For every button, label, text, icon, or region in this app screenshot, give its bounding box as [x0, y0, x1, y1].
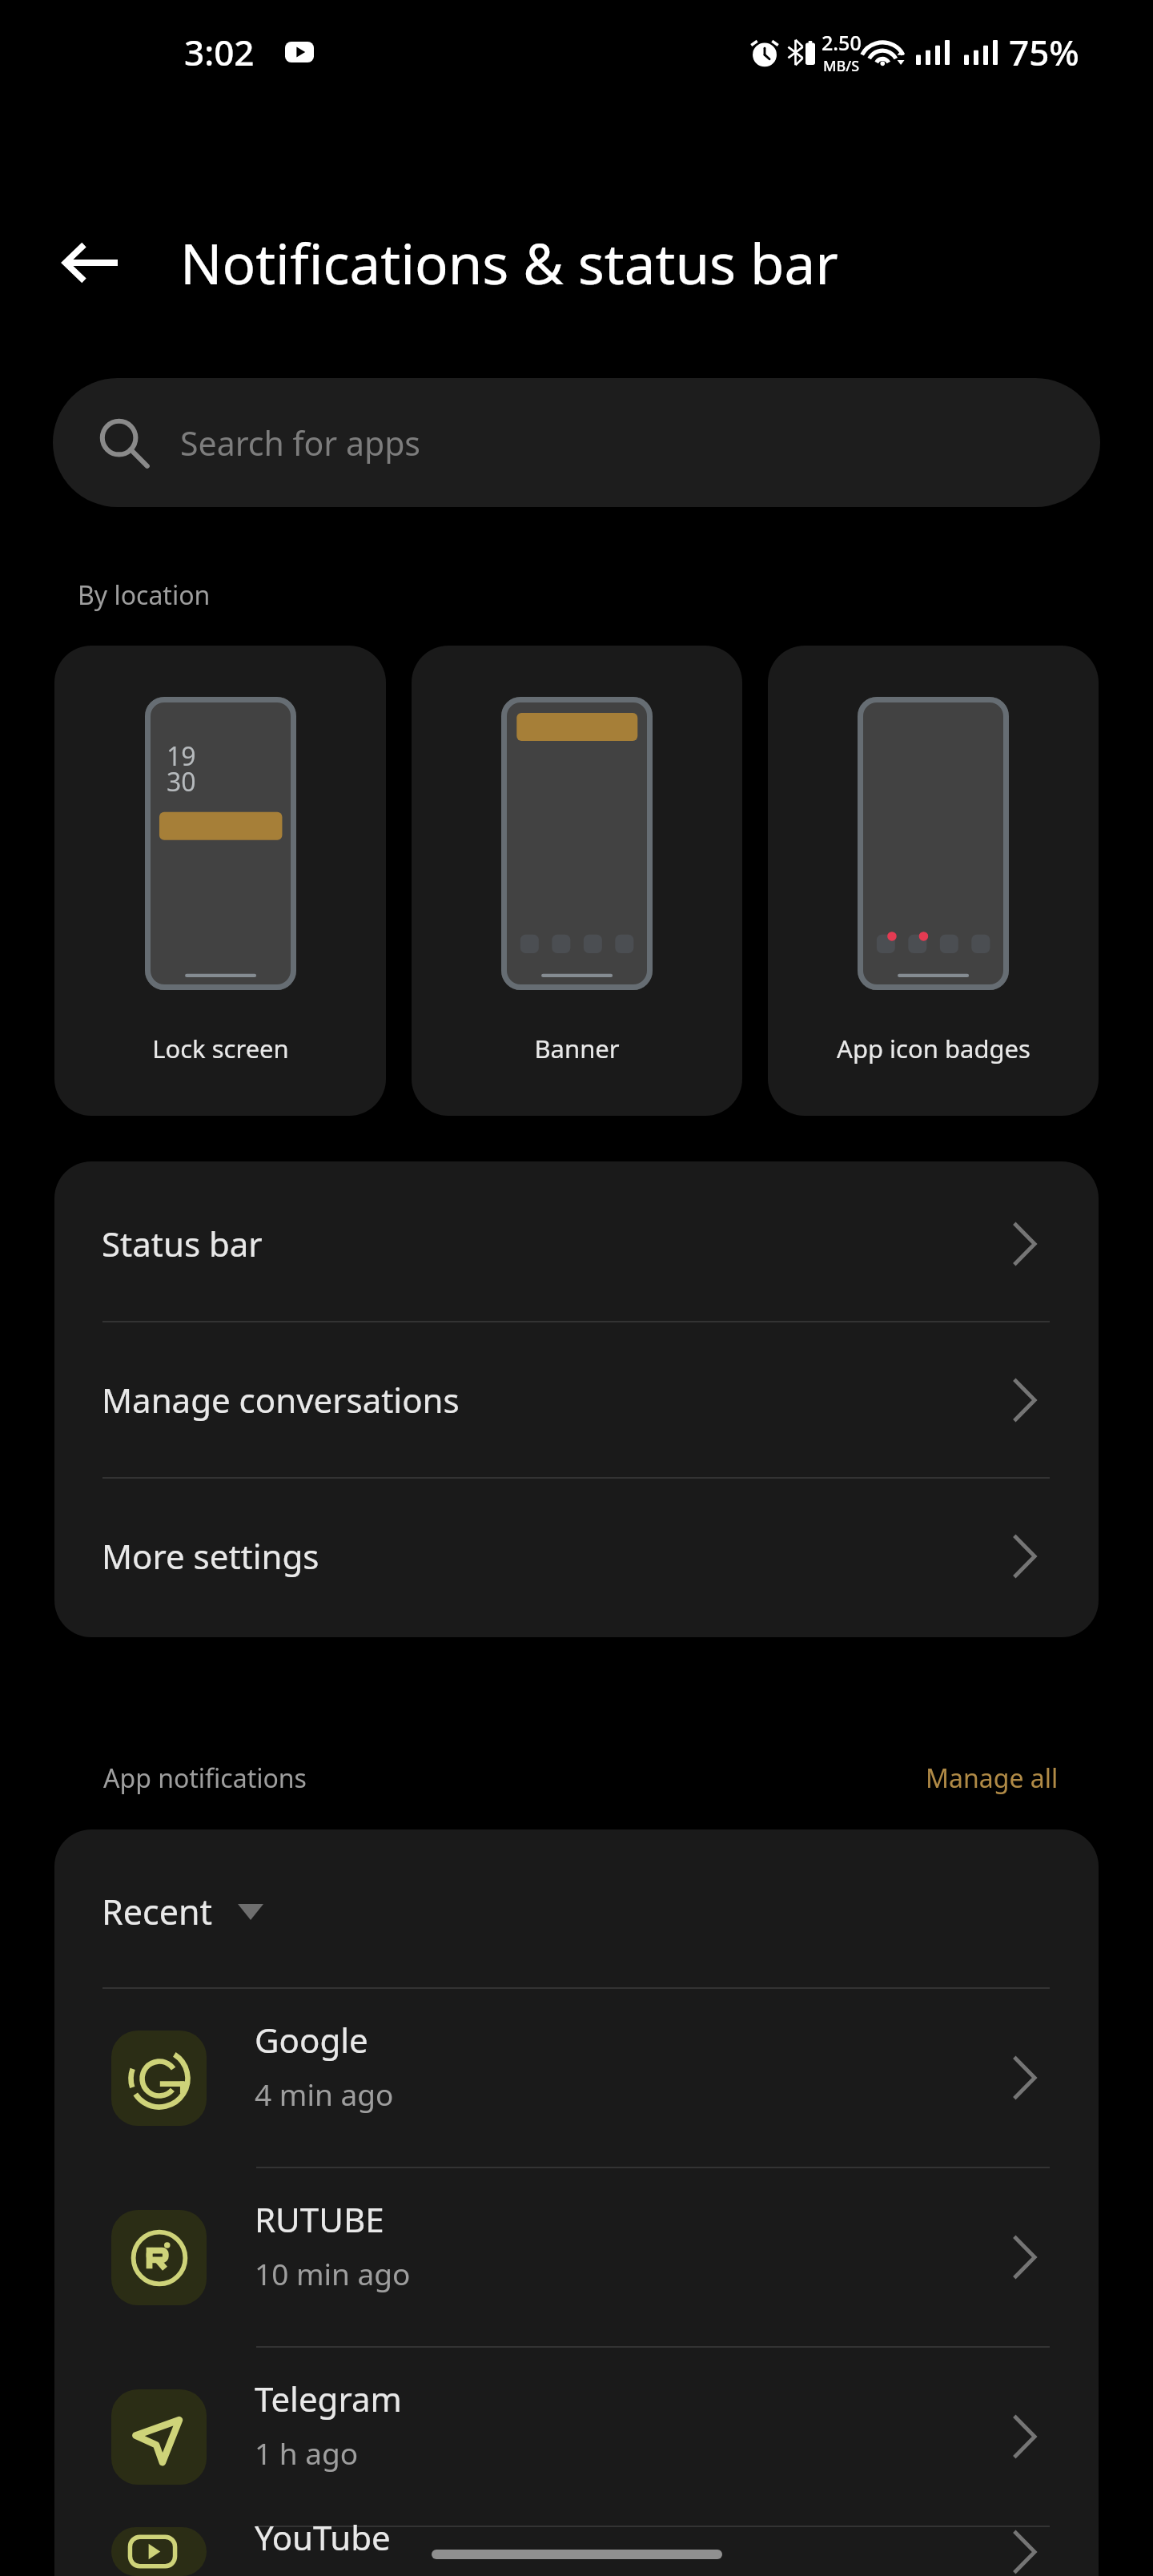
staticText: 3:02 — [184, 28, 255, 76]
staticText: Manage all — [926, 1761, 1059, 1796]
button[interactable]: 19 30 — [54, 646, 386, 1116]
button[interactable]: Manage conversations — [54, 1322, 1099, 1477]
button[interactable]: Recent — [54, 1829, 1099, 1987]
staticText: 19 30 — [167, 739, 196, 799]
staticText: 2.50 — [822, 29, 862, 56]
staticText: Recent — [102, 1888, 212, 1935]
staticText: Status bar — [102, 1221, 1012, 1266]
staticText: By location — [78, 578, 211, 613]
staticText: Search for apps — [180, 421, 420, 465]
staticText: Lock screen — [152, 1032, 289, 1065]
button[interactable]: Search for apps — [53, 378, 1100, 507]
staticText: RUTUBE — [255, 2196, 384, 2242]
button[interactable]: RUTUBE — [54, 2168, 1099, 2346]
button[interactable]: Manage all — [926, 1761, 1059, 1796]
staticText: 75% — [1009, 28, 1079, 76]
staticText: Google — [255, 2017, 368, 2063]
button[interactable]: Google — [54, 1989, 1099, 2167]
staticText: Banner — [534, 1032, 620, 1065]
button[interactable]: App icon badges — [768, 646, 1099, 1116]
button[interactable]: Status bar — [54, 1166, 1099, 1321]
staticText: App notifications — [103, 1761, 926, 1796]
staticText: More settings — [102, 1533, 1012, 1579]
staticText: Telegram — [255, 2376, 402, 2421]
staticText: 4 min ago — [255, 2074, 394, 2114]
button[interactable]: Banner — [412, 646, 742, 1116]
button[interactable]: More settings — [54, 1479, 1099, 1633]
staticText: YouTube — [255, 2514, 391, 2560]
button[interactable]: Telegram — [54, 2348, 1099, 2526]
staticText: Notifications & status bar — [180, 225, 838, 300]
staticText: MB/S — [823, 56, 860, 76]
button[interactable]: YouTube — [54, 2527, 1099, 2576]
button[interactable]: Back — [46, 219, 134, 307]
staticText: 1 h ago — [255, 2433, 359, 2473]
staticText: App icon badges — [837, 1032, 1030, 1065]
staticText: Manage conversations — [102, 1377, 1012, 1423]
staticText: 10 min ago — [255, 2253, 411, 2293]
